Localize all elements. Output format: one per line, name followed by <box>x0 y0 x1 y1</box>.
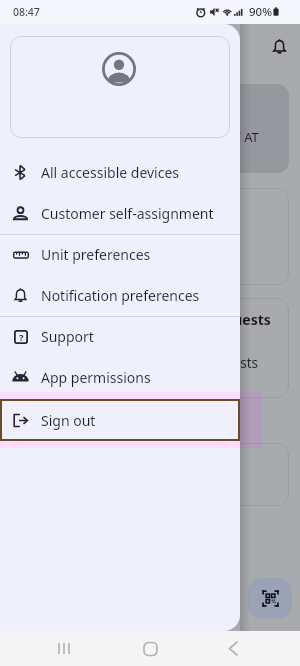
staticText: Notification preferences <box>41 286 200 305</box>
staticText: Sign out <box>41 411 96 430</box>
staticText: Closed requests <box>157 354 259 372</box>
button[interactable]: Unit preferences <box>0 234 240 275</box>
button[interactable]: App permissions <box>0 357 240 398</box>
staticText: 08:47 <box>13 5 40 19</box>
staticText: Support <box>41 327 94 346</box>
button[interactable] <box>12 443 289 506</box>
staticText: SAMPLE TEXT AT <box>159 128 259 146</box>
button[interactable]: Customer self-assignment <box>0 193 240 234</box>
staticText: All accessible devices <box>41 163 180 182</box>
button[interactable] <box>10 36 230 138</box>
button[interactable]: Notifications <box>268 38 292 62</box>
staticText: Open requests <box>169 310 271 329</box>
button[interactable]: Scan QR code <box>248 578 292 619</box>
button[interactable]: All accessible devices <box>0 152 240 193</box>
staticText: App permissions <box>41 368 151 387</box>
button[interactable]: Notification preferences <box>0 275 240 316</box>
button[interactable]: ? <box>0 316 240 357</box>
button[interactable]: Open requests <box>12 298 289 398</box>
button[interactable]: SAMPLE TEXT AT <box>12 84 289 173</box>
button[interactable]: Sign out <box>0 392 240 448</box>
staticText: Customer self-assignment <box>41 204 214 223</box>
button[interactable] <box>12 188 289 285</box>
staticText: Unit preferences <box>41 245 151 264</box>
staticText: ? <box>19 331 24 344</box>
staticText: 90% <box>249 4 272 20</box>
